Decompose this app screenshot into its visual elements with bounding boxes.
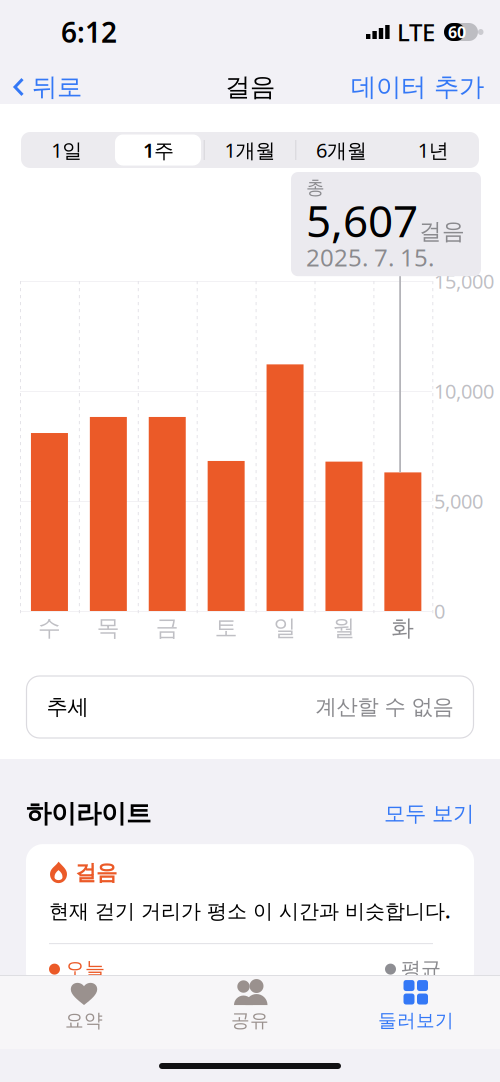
staticText: 1주: [143, 137, 174, 163]
staticText: 5,607: [306, 191, 418, 249]
button[interactable]: 요약: [1, 975, 167, 1037]
staticText: 데이터 추가: [351, 71, 484, 102]
staticText: 일: [274, 614, 297, 642]
staticText: 현재 걷기 거리가 평소 이 시간과 비슷합니다.: [49, 897, 451, 924]
button[interactable]: 1주: [113, 132, 204, 168]
staticText: 수: [38, 614, 61, 642]
button[interactable]: 뒤로: [0, 64, 92, 110]
staticText: 계산할 수 없음: [315, 694, 453, 720]
staticText: 뒤로: [32, 71, 82, 102]
staticText: 금: [156, 614, 179, 642]
staticText: 오늘: [65, 957, 105, 981]
button[interactable]: 데이터 추가: [341, 64, 500, 110]
staticText: 60: [448, 21, 466, 43]
staticText: 10,000: [434, 378, 494, 404]
staticText: 걸음: [225, 71, 275, 102]
staticText: 걸음: [419, 217, 465, 245]
staticText: 6:12: [61, 13, 117, 51]
staticText: 5,000: [434, 488, 483, 514]
button[interactable]: 1개월: [204, 132, 296, 168]
button[interactable]: 1년: [387, 132, 479, 168]
staticText: LTE: [397, 16, 435, 48]
staticText: 15,000: [434, 268, 494, 294]
staticText: 월: [332, 614, 355, 642]
staticText: 하이라이트: [26, 798, 151, 829]
staticText: 총: [306, 176, 325, 199]
staticText: 평균: [401, 957, 441, 981]
button[interactable]: 걸음: [26, 844, 474, 989]
staticText: 걸음: [75, 859, 117, 886]
staticText: 둘러보기: [378, 1009, 454, 1032]
staticText: 2025. 7. 15.: [306, 241, 434, 273]
staticText: 1일: [51, 137, 82, 163]
staticText: 목: [97, 614, 120, 642]
button[interactable]: 6개월: [296, 132, 387, 168]
button[interactable]: 모두 보기: [384, 800, 474, 827]
button[interactable]: 공유: [167, 975, 333, 1037]
button[interactable]: 1일: [21, 132, 113, 168]
staticText: 모두 보기: [384, 800, 474, 827]
staticText: 추세: [46, 694, 88, 720]
staticText: 1년: [418, 137, 449, 163]
button[interactable]: 둘러보기: [333, 975, 499, 1037]
staticText: 요약: [65, 1009, 103, 1032]
staticText: 1개월: [224, 137, 275, 163]
staticText: 화: [391, 614, 414, 642]
button[interactable]: 추세: [26, 676, 473, 738]
staticText: 공유: [231, 1009, 269, 1032]
staticText: 토: [215, 614, 238, 642]
staticText: 6개월: [316, 137, 367, 163]
staticText: 0: [434, 598, 445, 624]
